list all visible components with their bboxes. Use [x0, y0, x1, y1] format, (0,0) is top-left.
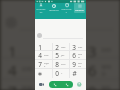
staticText: TUV [62, 87, 73, 90]
button[interactable]: Dial pad options [38, 81, 45, 88]
staticText: ABC [61, 46, 66, 49]
staticText: 3 [87, 40, 97, 59]
button[interactable]: 7 [1, 80, 40, 90]
staticText: # [72, 69, 77, 78]
button[interactable]: RECENTS [48, 3, 59, 13]
staticText: + [61, 72, 63, 75]
staticText: FAVORITES [36, 8, 46, 13]
staticText: 8 [55, 60, 59, 69]
staticText: ABC [62, 47, 73, 54]
staticText: ∗ [37, 70, 43, 78]
button[interactable]: 9 [80, 80, 120, 90]
button[interactable]: Add contact [76, 81, 83, 88]
staticText: 4 [8, 59, 17, 80]
button[interactable]: Add contact [37, 33, 42, 38]
staticText: 1 [8, 40, 17, 59]
staticText: GHI [44, 54, 49, 57]
staticText: MNO [78, 53, 83, 59]
button[interactable]: 8 [40, 80, 80, 90]
button[interactable]: 1 [35, 43, 52, 51]
staticText: WXYZ [78, 62, 83, 68]
staticText: 2 [48, 40, 57, 59]
button[interactable]: 6 [69, 51, 86, 60]
staticText: CONTACTS [61, 8, 72, 13]
staticText: 5 [55, 51, 59, 60]
button[interactable]: KEYPAD [74, 3, 85, 13]
staticText: PQRS [22, 85, 33, 90]
button[interactable]: 2 [40, 40, 80, 59]
staticText: 3 [72, 43, 76, 51]
staticText: 4 [38, 51, 42, 60]
button[interactable]: 4 [35, 51, 52, 60]
staticText: 7 [38, 60, 42, 69]
staticText: KEYPAD [75, 9, 84, 12]
button[interactable]: 0 [52, 69, 69, 78]
staticText: DEF [78, 46, 83, 49]
button[interactable]: 5 [52, 51, 69, 60]
staticText: JKL [61, 54, 65, 57]
button[interactable]: # [69, 69, 86, 78]
button[interactable]: 8 [52, 60, 69, 69]
staticText: 6 [72, 51, 76, 60]
button[interactable]: 7 [35, 60, 52, 69]
staticText: 2 [55, 43, 59, 51]
staticText: 6 [87, 59, 97, 80]
staticText: WXYZ [102, 85, 113, 90]
staticText: 7 [8, 80, 17, 90]
staticText: TUV [61, 63, 66, 66]
button[interactable]: 2 [52, 43, 69, 51]
staticText: PQRS [44, 62, 49, 68]
button[interactable]: 4 [1, 59, 40, 80]
button[interactable]: 5 [40, 59, 80, 80]
button[interactable]: 3 [80, 40, 120, 59]
staticText: 0 [55, 69, 59, 78]
staticText: RECENTS [49, 9, 59, 12]
staticText: JKL [62, 66, 71, 73]
staticText: 1 [38, 43, 42, 51]
staticText: 9 [72, 60, 76, 69]
button[interactable]: 1 [1, 40, 40, 59]
button[interactable]: Voice call [61, 81, 73, 88]
button[interactable]: CONTACTS [61, 3, 72, 13]
staticText: 9 [87, 80, 97, 90]
staticText: 8 [48, 80, 57, 90]
staticText: 5 [48, 59, 57, 80]
button[interactable]: Video call [49, 81, 61, 88]
button[interactable]: FAVORITES [36, 3, 46, 13]
button[interactable]: 6 [80, 59, 120, 80]
button[interactable]: 9 [69, 60, 86, 69]
button[interactable]: 3 [69, 43, 86, 51]
button[interactable]: ∗ [35, 69, 52, 78]
